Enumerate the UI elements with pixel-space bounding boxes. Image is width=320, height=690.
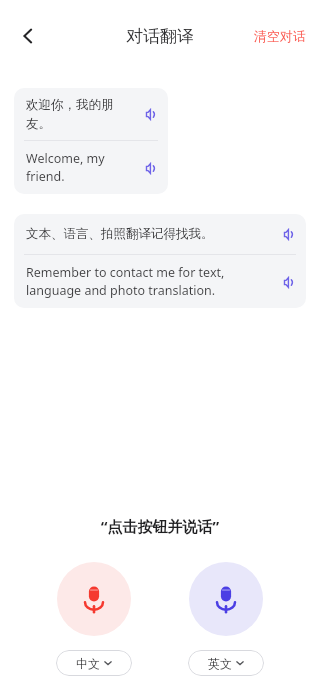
button[interactable]: 欢迎你，我的朋友。 (14, 88, 168, 194)
button[interactable]: Play audio (138, 157, 160, 179)
staticText: Welcome, my friend. (26, 150, 132, 185)
staticText: 中文 (76, 656, 100, 671)
staticText: Remember to contact me for text, languag… (26, 264, 270, 299)
button[interactable]: Back (8, 16, 48, 56)
button[interactable]: 中文 (56, 650, 132, 676)
button[interactable]: Play audio (276, 271, 298, 293)
staticText: 英文 (208, 656, 232, 671)
staticText: 文本、语言、拍照翻译记得找我。 (26, 226, 270, 242)
button[interactable]: Speak English (189, 562, 263, 636)
button[interactable]: Play audio (138, 103, 160, 125)
staticText: 清空对话 (254, 28, 306, 44)
button[interactable]: 文本、语言、拍照翻译记得找我。 (14, 214, 306, 308)
staticText: 对话翻译 (126, 26, 194, 47)
button[interactable]: Play audio (276, 223, 298, 245)
button[interactable]: 英文 (188, 650, 264, 676)
button[interactable]: Speak Chinese (57, 562, 131, 636)
staticText: 欢迎你，我的朋友。 (26, 97, 132, 131)
staticText: “点击按钮并说话” (0, 516, 320, 536)
button[interactable]: 清空对话 (250, 22, 310, 50)
